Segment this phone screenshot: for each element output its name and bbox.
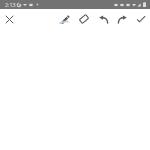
- staticText: 2:13: [5, 1, 16, 8]
- button[interactable]: Done: [132, 11, 150, 29]
- button[interactable]: Undo: [95, 11, 113, 29]
- button[interactable]: Redo: [113, 11, 131, 29]
- button[interactable]: Pen: [56, 11, 74, 29]
- button[interactable]: Close: [0, 10, 18, 28]
- button[interactable]: Eraser: [75, 11, 93, 29]
